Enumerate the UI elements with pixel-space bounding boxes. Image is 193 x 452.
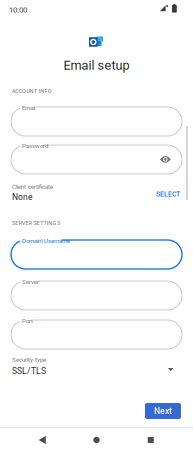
button[interactable]: Email [11,107,182,136]
staticText: Email setup [63,58,129,73]
staticText: Security type [12,356,46,363]
button[interactable]: Password [11,145,182,174]
staticText: Password [22,142,48,150]
staticText: SELECT [156,190,180,198]
staticText: None [12,192,33,202]
staticText: SERVER SETTINGS [12,220,60,226]
staticText: SSL/TLS [12,366,46,376]
button[interactable]: Port [11,320,182,349]
button[interactable]: Domain\Username [11,240,182,269]
button[interactable]: Next [145,403,181,419]
button[interactable]: Home [84,428,108,452]
staticText: Port [22,317,33,325]
staticText: Client certificate [12,183,53,190]
button[interactable]: Server [11,281,182,310]
staticText: ACCOUNT INFO [12,88,52,94]
button[interactable]: SELECT [156,190,180,198]
button[interactable]: Recent apps [139,428,163,452]
staticText: Domain\Username [22,237,70,245]
staticText: Next [154,406,172,416]
button[interactable]: Security type [168,368,173,371]
staticText: 10:00 [9,5,27,14]
staticText: Email [22,104,35,112]
staticText: Server [22,278,39,286]
button[interactable]: Back [30,428,54,452]
